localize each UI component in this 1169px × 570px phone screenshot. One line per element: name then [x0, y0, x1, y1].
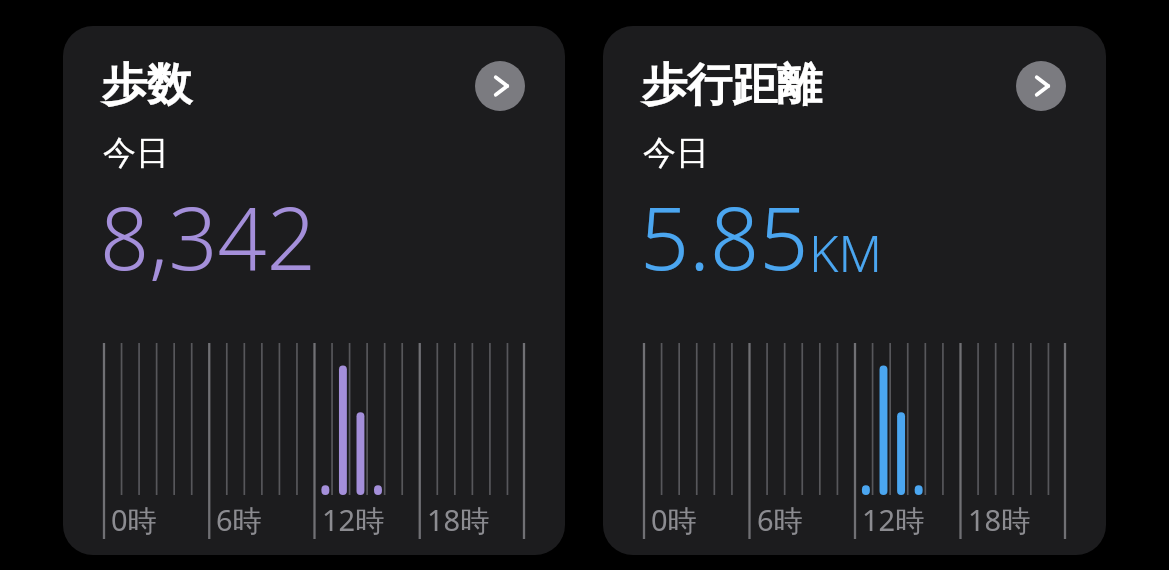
- staticText: 18時: [968, 500, 1031, 540]
- staticText: 0時: [651, 500, 697, 540]
- staticText: 0時: [111, 500, 157, 540]
- staticText: 歩数: [102, 57, 192, 114]
- button[interactable]: 詳細を表示: [1016, 61, 1066, 111]
- staticText: KM: [809, 219, 882, 287]
- staticText: 8,342: [100, 178, 316, 295]
- staticText: 歩行距離: [642, 57, 822, 114]
- button[interactable]: 歩行距離: [603, 26, 1106, 555]
- button[interactable]: 歩数: [63, 26, 565, 555]
- staticText: 18時: [427, 500, 490, 540]
- staticText: 6時: [757, 500, 803, 540]
- staticText: 6時: [216, 500, 262, 540]
- staticText: 12時: [322, 500, 385, 540]
- staticText: 5.85: [640, 178, 809, 295]
- staticText: 12時: [862, 500, 925, 540]
- button[interactable]: 詳細を表示: [475, 61, 525, 111]
- staticText: 今日: [643, 132, 709, 174]
- staticText: 今日: [103, 132, 169, 174]
